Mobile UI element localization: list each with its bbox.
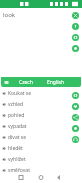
staticText: English	[47, 79, 65, 86]
button[interactable]: action	[72, 136, 79, 143]
button[interactable]: English	[41, 77, 71, 87]
button[interactable]: pohled	[0, 110, 82, 121]
staticText: vypadat	[8, 123, 27, 130]
button[interactable]: action	[72, 23, 79, 30]
button[interactable]: action	[72, 34, 79, 41]
staticText: dívat se	[8, 134, 27, 141]
button[interactable]: action	[72, 125, 79, 132]
staticText: směřovat	[8, 167, 30, 174]
button[interactable]: Czech	[11, 77, 41, 87]
staticText: Czech	[19, 79, 33, 86]
button[interactable]: směřovat	[0, 165, 82, 176]
button[interactable]: action	[72, 45, 79, 52]
button[interactable]: action	[72, 12, 79, 19]
button[interactable]: action	[72, 92, 79, 99]
button[interactable]: Menu	[1, 77, 11, 87]
staticText: pohled	[8, 112, 25, 119]
button[interactable]: hledět	[0, 143, 82, 154]
button[interactable]: vyhlížet	[0, 154, 82, 165]
staticText: Koukat se	[8, 90, 32, 97]
staticText: look	[3, 11, 16, 19]
button[interactable]: action	[72, 114, 79, 121]
button[interactable]: vypadat	[0, 121, 82, 132]
button[interactable]: vzhled	[0, 99, 82, 110]
staticText: vzhled	[8, 101, 24, 108]
button[interactable]: action	[72, 103, 79, 110]
staticText: vyhlížet	[8, 156, 26, 163]
button[interactable]: Koukat se	[0, 88, 82, 99]
staticText: hledět	[8, 145, 23, 152]
button[interactable]: dívat se	[0, 132, 82, 143]
